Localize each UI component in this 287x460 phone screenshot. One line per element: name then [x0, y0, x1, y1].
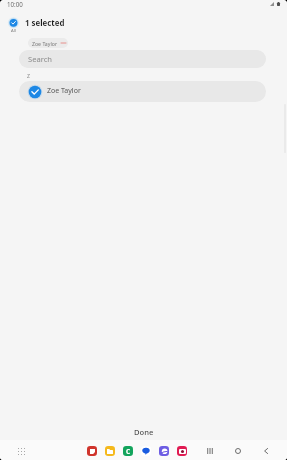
button[interactable]: Zoe Taylor — [19, 81, 266, 102]
button[interactable]: Recents — [204, 445, 216, 457]
button[interactable]: Camera — [177, 446, 187, 456]
button[interactable]: Back — [260, 445, 272, 457]
staticText: Search — [28, 54, 53, 64]
staticText: Zoe Taylor — [32, 40, 58, 47]
button[interactable]: Done — [0, 423, 287, 441]
button[interactable]: Calculator — [123, 446, 133, 456]
staticText: Zoe Taylor — [47, 86, 81, 96]
staticText: C — [126, 447, 131, 456]
staticText: 1 selected — [25, 18, 65, 29]
button[interactable]: Home — [232, 445, 244, 457]
button[interactable]: Notes — [87, 446, 97, 456]
staticText: Z — [27, 72, 30, 79]
button[interactable]: Select all — [4, 15, 23, 34]
staticText: Done — [134, 427, 154, 437]
button[interactable]: Search — [19, 50, 266, 68]
button[interactable]: Messages — [141, 446, 151, 456]
button[interactable]: Files — [105, 446, 115, 456]
staticText: All — [11, 28, 16, 34]
staticText: 10:00 — [7, 0, 23, 8]
button[interactable]: Zoe Taylor — [28, 38, 68, 48]
button[interactable]: Apps — [15, 445, 27, 457]
button[interactable]: Internet — [159, 446, 169, 456]
